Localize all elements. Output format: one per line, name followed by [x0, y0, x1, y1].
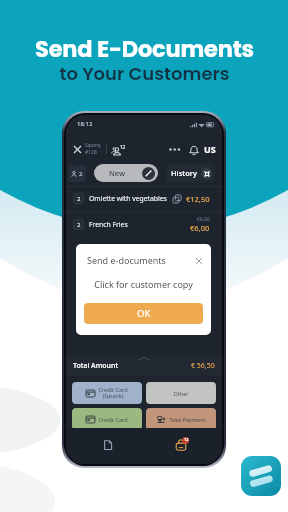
staticText: Send e-documents: [87, 254, 166, 266]
staticText: 2: [79, 170, 83, 178]
other: Settings: [201, 168, 212, 179]
button[interactable]: US: [204, 143, 216, 155]
button[interactable]: Take Payment: [146, 408, 216, 430]
staticText: History: [171, 168, 197, 178]
button[interactable]: Credit Card (İşbank): [72, 382, 142, 404]
staticText: OK: [137, 307, 151, 320]
staticText: Omlette with vegetables: [89, 194, 167, 203]
button[interactable]: OK: [84, 303, 203, 324]
staticText: New: [109, 168, 126, 178]
button[interactable]: 2: [73, 186, 210, 211]
staticText: Click for customer copy: [76, 278, 211, 290]
button[interactable]: Credit Card: [72, 408, 142, 430]
staticText: 2: [77, 221, 81, 229]
button[interactable]: Other: [146, 382, 216, 404]
staticText: 2: [77, 195, 81, 203]
button[interactable]: Notifications: [185, 141, 202, 158]
staticText: 12: [184, 437, 189, 442]
button[interactable]: History: [166, 164, 215, 182]
button[interactable]: 2: [68, 165, 86, 182]
staticText: to Your Customers: [59, 61, 230, 86]
other: App icon: [241, 456, 281, 496]
staticText: Sipariş: [85, 142, 101, 149]
staticText: €6,00: [190, 223, 210, 233]
button[interactable]: New: [94, 164, 158, 182]
button[interactable]: 2: [73, 211, 210, 237]
staticText: €8,00: [197, 216, 210, 223]
staticText: €12,50: [186, 194, 210, 204]
button[interactable]: Cart: [165, 435, 197, 455]
button[interactable]: Close dialog: [193, 255, 204, 266]
staticText: #128: [85, 149, 97, 156]
button[interactable]: Close: [70, 142, 84, 156]
staticText: Other: [173, 390, 189, 397]
button[interactable]: More options: [166, 141, 183, 158]
staticText: Credit Card: [98, 416, 128, 423]
staticText: Total Amount: [73, 361, 119, 371]
staticText: 18:12: [77, 120, 93, 128]
staticText: € 56,50: [191, 361, 215, 371]
staticText: Credit Card (İşbank): [98, 386, 128, 400]
button[interactable]: Orders: [92, 435, 124, 455]
staticText: Take Payment: [169, 416, 206, 423]
button[interactable]: Guests: [111, 142, 127, 157]
staticText: French Fries: [89, 220, 128, 229]
staticText: Send E-Documents: [35, 33, 254, 64]
staticText: 12: [120, 144, 126, 150]
